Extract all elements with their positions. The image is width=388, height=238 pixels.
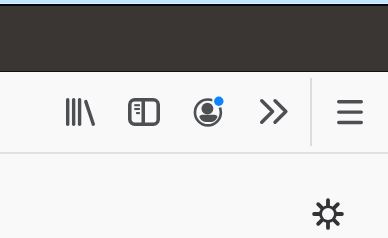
button[interactable]: Settings <box>306 192 350 236</box>
button[interactable]: More tools <box>248 89 298 137</box>
button[interactable]: Sidebar <box>116 89 172 137</box>
button[interactable]: Library <box>54 89 106 137</box>
button[interactable]: Menu <box>325 89 375 137</box>
button[interactable]: Account <box>187 89 233 137</box>
